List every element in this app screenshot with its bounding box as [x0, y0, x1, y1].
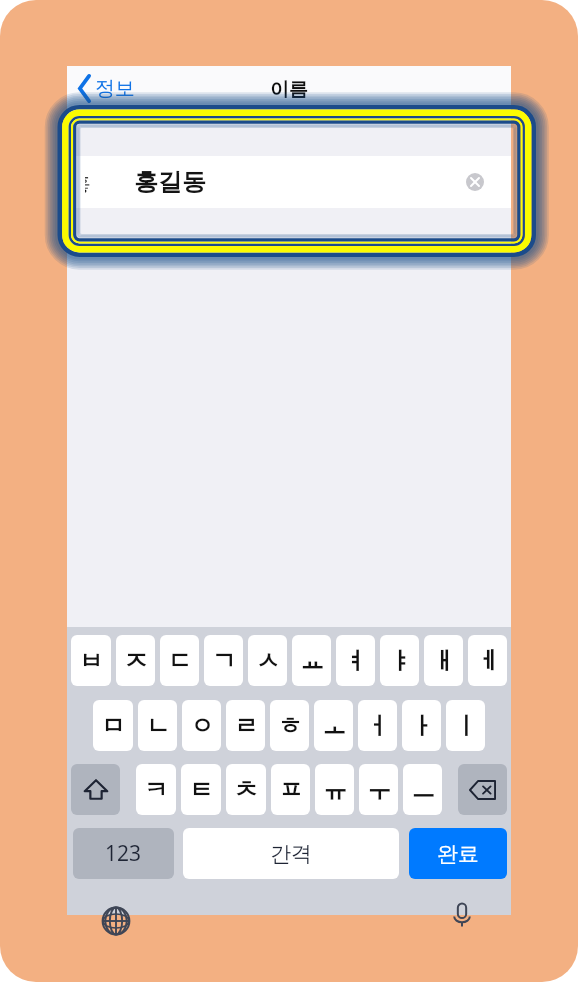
button[interactable]: ㅁ: [93, 700, 133, 751]
staticText: ㅡ: [411, 775, 435, 805]
staticText: 123: [105, 839, 142, 868]
staticText: ㄹ: [234, 711, 258, 741]
button[interactable]: ㅓ: [358, 700, 397, 751]
button[interactable]: ㄷ: [160, 635, 199, 686]
button[interactable]: Clear text: [466, 173, 484, 191]
button[interactable]: ㅎ: [270, 700, 309, 751]
staticText: ㅠ: [323, 775, 347, 805]
staticText: ㅁ: [101, 711, 125, 741]
staticText: ㅍ: [279, 775, 303, 805]
staticText: ㅗ: [322, 711, 346, 741]
staticText: ㅜ: [367, 775, 391, 805]
button[interactable]: ㅗ: [314, 700, 353, 751]
staticText: 완료: [437, 841, 479, 867]
staticText: ㅅ: [256, 646, 280, 676]
staticText: ㅎ: [278, 711, 302, 741]
button[interactable]: 정보: [67, 74, 145, 103]
button[interactable]: ㄴ: [138, 700, 177, 751]
button[interactable]: ㅂ: [71, 635, 111, 686]
button[interactable]: ㅠ: [315, 764, 354, 815]
button[interactable]: 123: [73, 828, 174, 879]
button[interactable]: ㄹ: [226, 700, 265, 751]
staticText: ㅂ: [79, 646, 103, 676]
staticText: ㅋ: [144, 775, 168, 805]
staticText: ㅣ: [454, 711, 478, 741]
button[interactable]: ㅣ: [446, 700, 485, 751]
staticText: ㅇ: [190, 711, 214, 741]
staticText: 이름: [270, 78, 308, 102]
staticText: ㅕ: [344, 646, 368, 676]
staticText: ㅓ: [366, 711, 390, 741]
staticText: ㅏ: [410, 711, 434, 741]
staticText: ㅛ: [300, 646, 324, 676]
staticText: ㄱ: [212, 646, 236, 676]
button[interactable]: ㅐ: [424, 635, 463, 686]
button[interactable]: ㅈ: [116, 635, 155, 686]
button[interactable]: Change keyboard: [102, 907, 130, 935]
staticText: 간격: [270, 841, 312, 867]
button[interactable]: ㅜ: [359, 764, 398, 815]
button[interactable]: 간격: [183, 828, 399, 879]
button[interactable]: 완료: [409, 828, 507, 879]
button[interactable]: ㅡ: [403, 764, 442, 815]
button[interactable]: ㅍ: [271, 764, 310, 815]
button[interactable]: Shift: [71, 764, 120, 815]
staticText: ㄷ: [168, 646, 192, 676]
button[interactable]: Dictation: [449, 902, 475, 928]
button[interactable]: ㅋ: [136, 764, 176, 815]
button[interactable]: ㅇ: [182, 700, 221, 751]
button[interactable]: ㅅ: [248, 635, 287, 686]
staticText: ㅊ: [234, 775, 258, 805]
button[interactable]: ㅕ: [336, 635, 375, 686]
staticText: ㅐ: [432, 646, 456, 676]
staticText: ㅌ: [189, 775, 213, 805]
staticText: ㅈ: [124, 646, 148, 676]
staticText: 홍길동: [134, 167, 206, 197]
staticText: ㅑ: [388, 646, 412, 676]
staticText: 정보: [95, 76, 135, 101]
button[interactable]: ㅛ: [292, 635, 331, 686]
button[interactable]: ㅊ: [226, 764, 266, 815]
button[interactable]: Backspace: [458, 764, 507, 815]
button[interactable]: ㅑ: [380, 635, 419, 686]
staticText: ㄴ: [146, 711, 170, 741]
staticText: ㅔ: [476, 646, 500, 676]
button[interactable]: ㅌ: [181, 764, 221, 815]
button[interactable]: ㅔ: [468, 635, 507, 686]
button[interactable]: ㄱ: [204, 635, 243, 686]
button[interactable]: ㅏ: [402, 700, 441, 751]
